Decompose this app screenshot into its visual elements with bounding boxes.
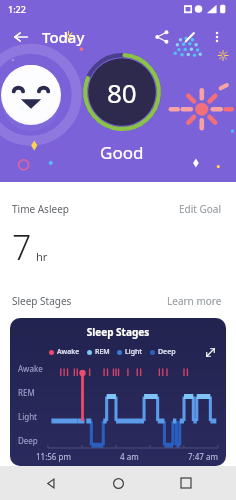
staticText: Deep: [18, 435, 38, 446]
button[interactable]: Expand chart: [202, 344, 218, 360]
staticText: Light: [125, 347, 143, 357]
staticText: Sleep Stages: [10, 325, 226, 339]
button[interactable]: Edit Goal: [177, 200, 224, 218]
staticText: 4 am: [120, 451, 139, 462]
staticText: 1:22: [8, 3, 26, 15]
staticText: Awake: [57, 347, 80, 357]
button[interactable]: Recent apps: [169, 466, 203, 500]
staticText: 7: [12, 224, 32, 270]
staticText: Learn more: [167, 294, 222, 308]
staticText: REM: [18, 387, 35, 398]
button[interactable]: Edit: [176, 23, 204, 51]
staticText: Time Asleep: [12, 202, 69, 216]
staticText: Deep: [158, 347, 176, 357]
button[interactable]: Back: [34, 466, 68, 500]
button[interactable]: Share: [148, 23, 176, 51]
staticText: 80: [107, 75, 137, 110]
button[interactable]: Sleep Stages: [10, 318, 226, 466]
staticText: 7:47 am: [188, 451, 218, 462]
staticText: Edit Goal: [179, 202, 222, 216]
staticText: Today: [42, 27, 85, 47]
button[interactable]: More options: [204, 24, 230, 50]
staticText: 11:56 pm: [36, 451, 71, 462]
staticText: Light: [18, 411, 38, 422]
button[interactable]: Back: [6, 22, 36, 52]
staticText: Sleep Stages: [12, 294, 72, 308]
staticText: REM: [95, 347, 110, 357]
button[interactable]: Sleep score 80, Good: [82, 52, 162, 132]
button[interactable]: Home: [101, 466, 135, 500]
staticText: hr: [36, 249, 48, 264]
button[interactable]: Learn more: [165, 292, 224, 310]
staticText: Good: [100, 141, 144, 164]
staticText: Awake: [18, 363, 43, 374]
